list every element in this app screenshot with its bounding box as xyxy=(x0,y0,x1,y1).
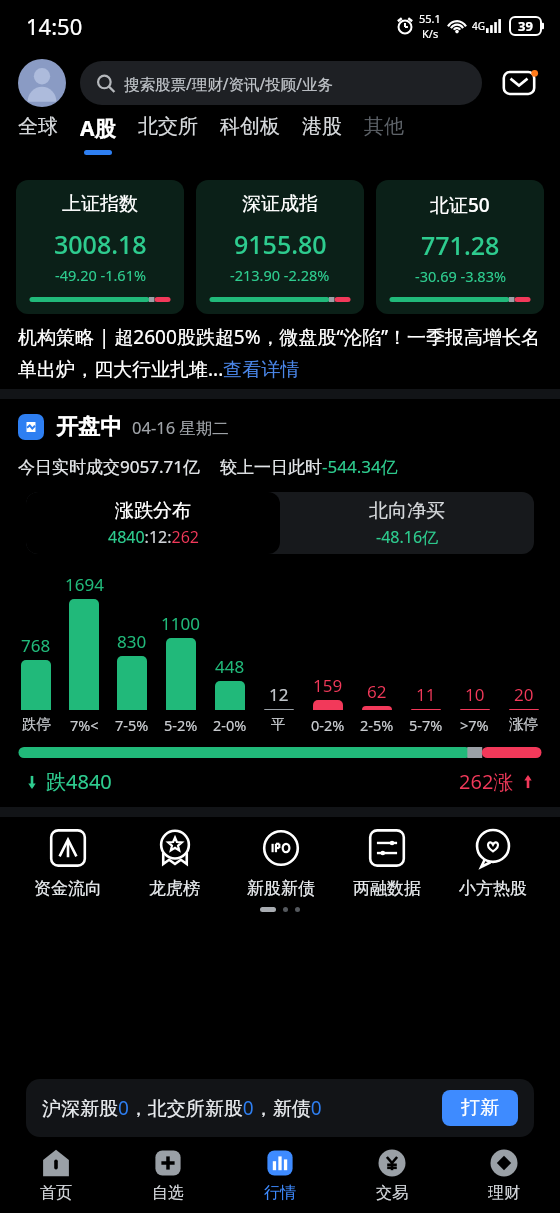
staticText: 4840:12:262 xyxy=(108,526,199,548)
staticText: 20 xyxy=(514,683,534,706)
button[interactable]: A股 xyxy=(80,114,138,155)
staticText: 全球 xyxy=(18,114,58,139)
staticText: 涨跌分布 xyxy=(115,499,191,523)
staticText: 两融数据 xyxy=(353,878,421,899)
staticText: 首页 xyxy=(40,1183,72,1203)
staticText: 北向净买 xyxy=(369,499,445,523)
staticText: 262涨 xyxy=(459,768,514,795)
staticText: 北证50 xyxy=(430,192,490,218)
staticText: 771.28 xyxy=(421,228,500,262)
staticText: 14:50 xyxy=(26,11,83,41)
staticText: 448 xyxy=(215,655,245,678)
staticText: -213.90 -2.28% xyxy=(230,265,330,285)
button[interactable]: 自选 xyxy=(112,1137,224,1213)
staticText: 自选 xyxy=(152,1183,184,1203)
button[interactable]: 资金流向 xyxy=(14,827,121,899)
staticText: 1100 xyxy=(161,612,200,635)
staticText: 0-2% xyxy=(311,715,345,735)
staticText: 平 xyxy=(271,715,286,733)
staticText: 768 xyxy=(21,634,51,657)
staticText: 龙虎榜 xyxy=(149,878,200,899)
staticText: 今日实时成交9057.71亿 xyxy=(18,455,200,478)
staticText: 交易 xyxy=(376,1183,408,1203)
staticText: 科创板 xyxy=(220,114,280,139)
staticText: 资金流向 xyxy=(34,878,102,899)
button[interactable]: 其他 xyxy=(364,114,404,146)
staticText: 理财 xyxy=(488,1183,520,1203)
button[interactable]: 深证成指 xyxy=(196,180,364,314)
button[interactable]: 搜索股票/理财/资讯/投顾/业务 xyxy=(80,61,482,105)
button[interactable]: 上证指数 xyxy=(16,180,184,314)
button[interactable]: 首页 xyxy=(0,1137,112,1213)
button[interactable]: 港股 xyxy=(302,114,364,146)
staticText: 5-7% xyxy=(409,715,443,735)
staticText: 沪深新股0，北交所新股0，新债0 xyxy=(42,1095,322,1121)
button[interactable]: 涨跌分布 xyxy=(26,492,280,554)
staticText: 39 xyxy=(518,17,533,35)
staticText: 其他 xyxy=(364,114,404,139)
button[interactable]: 行情 xyxy=(224,1137,336,1213)
staticText: >7% xyxy=(460,715,489,735)
staticText: 机构策略 | 超2600股跌超5%，微盘股“沦陷”！一季报高增长名单出炉，四大行… xyxy=(18,324,542,381)
button[interactable]: 龙虎榜 xyxy=(121,827,228,899)
button[interactable]: 北向净买 xyxy=(280,492,534,554)
button[interactable]: Profile xyxy=(18,59,66,107)
staticText: 深证成指 xyxy=(242,192,318,216)
staticText: 12 xyxy=(269,683,289,706)
button[interactable]: Messages xyxy=(496,60,542,106)
staticText: 10 xyxy=(465,683,485,706)
staticText: 2-0% xyxy=(213,715,247,735)
staticText: 1694 xyxy=(65,573,104,596)
staticText: 搜索股票/理财/资讯/投顾/业务 xyxy=(124,73,334,94)
staticText: A股 xyxy=(80,114,116,143)
button[interactable]: 科创板 xyxy=(220,114,302,146)
staticText: 北交所 xyxy=(138,114,198,139)
staticText: 小方热股 xyxy=(459,878,527,899)
button[interactable]: 北证50 xyxy=(376,180,544,314)
button[interactable]: 机构策略 | 超2600股跌超5%，微盘股“沦陷”！一季报高增长名单出炉，四大行… xyxy=(18,324,542,381)
staticText: 涨停 xyxy=(509,715,538,733)
button[interactable]: 北交所 xyxy=(138,114,220,146)
staticText: 跌停 xyxy=(22,715,51,733)
button[interactable]: 交易 xyxy=(336,1137,448,1213)
staticText: 3008.18 xyxy=(54,227,147,261)
staticText: 62 xyxy=(367,680,387,703)
staticText: 港股 xyxy=(302,114,342,139)
button[interactable]: 沪深新股0，北交所新股0，新债0 xyxy=(26,1079,534,1137)
staticText: -48.16亿 xyxy=(376,526,439,548)
button[interactable]: 新股新债 xyxy=(228,827,334,899)
staticText: 9155.80 xyxy=(234,227,327,261)
button[interactable]: 小方热股 xyxy=(440,827,546,899)
staticText: 行情 xyxy=(264,1183,296,1203)
staticText: 159 xyxy=(313,674,343,697)
staticText: K/s xyxy=(422,26,439,41)
staticText: -30.69 -3.83% xyxy=(415,266,506,286)
staticText: 跌4840 xyxy=(46,768,112,795)
staticText: 2-5% xyxy=(360,715,394,735)
staticText: 55.1 xyxy=(419,11,441,26)
staticText: 较上一日此时-544.34亿 xyxy=(220,455,398,478)
staticText: 7-5% xyxy=(115,715,149,735)
staticText: 5-2% xyxy=(164,715,198,735)
button[interactable]: 理财 xyxy=(448,1137,560,1213)
button[interactable]: 打新 xyxy=(442,1090,518,1126)
staticText: 4G xyxy=(472,19,485,33)
button[interactable]: 两融数据 xyxy=(334,827,440,899)
staticText: 新股新债 xyxy=(247,878,315,899)
button[interactable]: 全球 xyxy=(18,114,80,146)
staticText: 打新 xyxy=(461,1096,499,1120)
staticText: 7%< xyxy=(70,715,99,735)
staticText: 830 xyxy=(117,630,147,653)
staticText: -49.20 -1.61% xyxy=(55,265,146,285)
staticText: 上证指数 xyxy=(62,192,138,216)
staticText: 11 xyxy=(416,683,436,706)
staticText: 04-16 星期二 xyxy=(132,416,229,439)
staticText: 开盘中 xyxy=(56,413,122,441)
